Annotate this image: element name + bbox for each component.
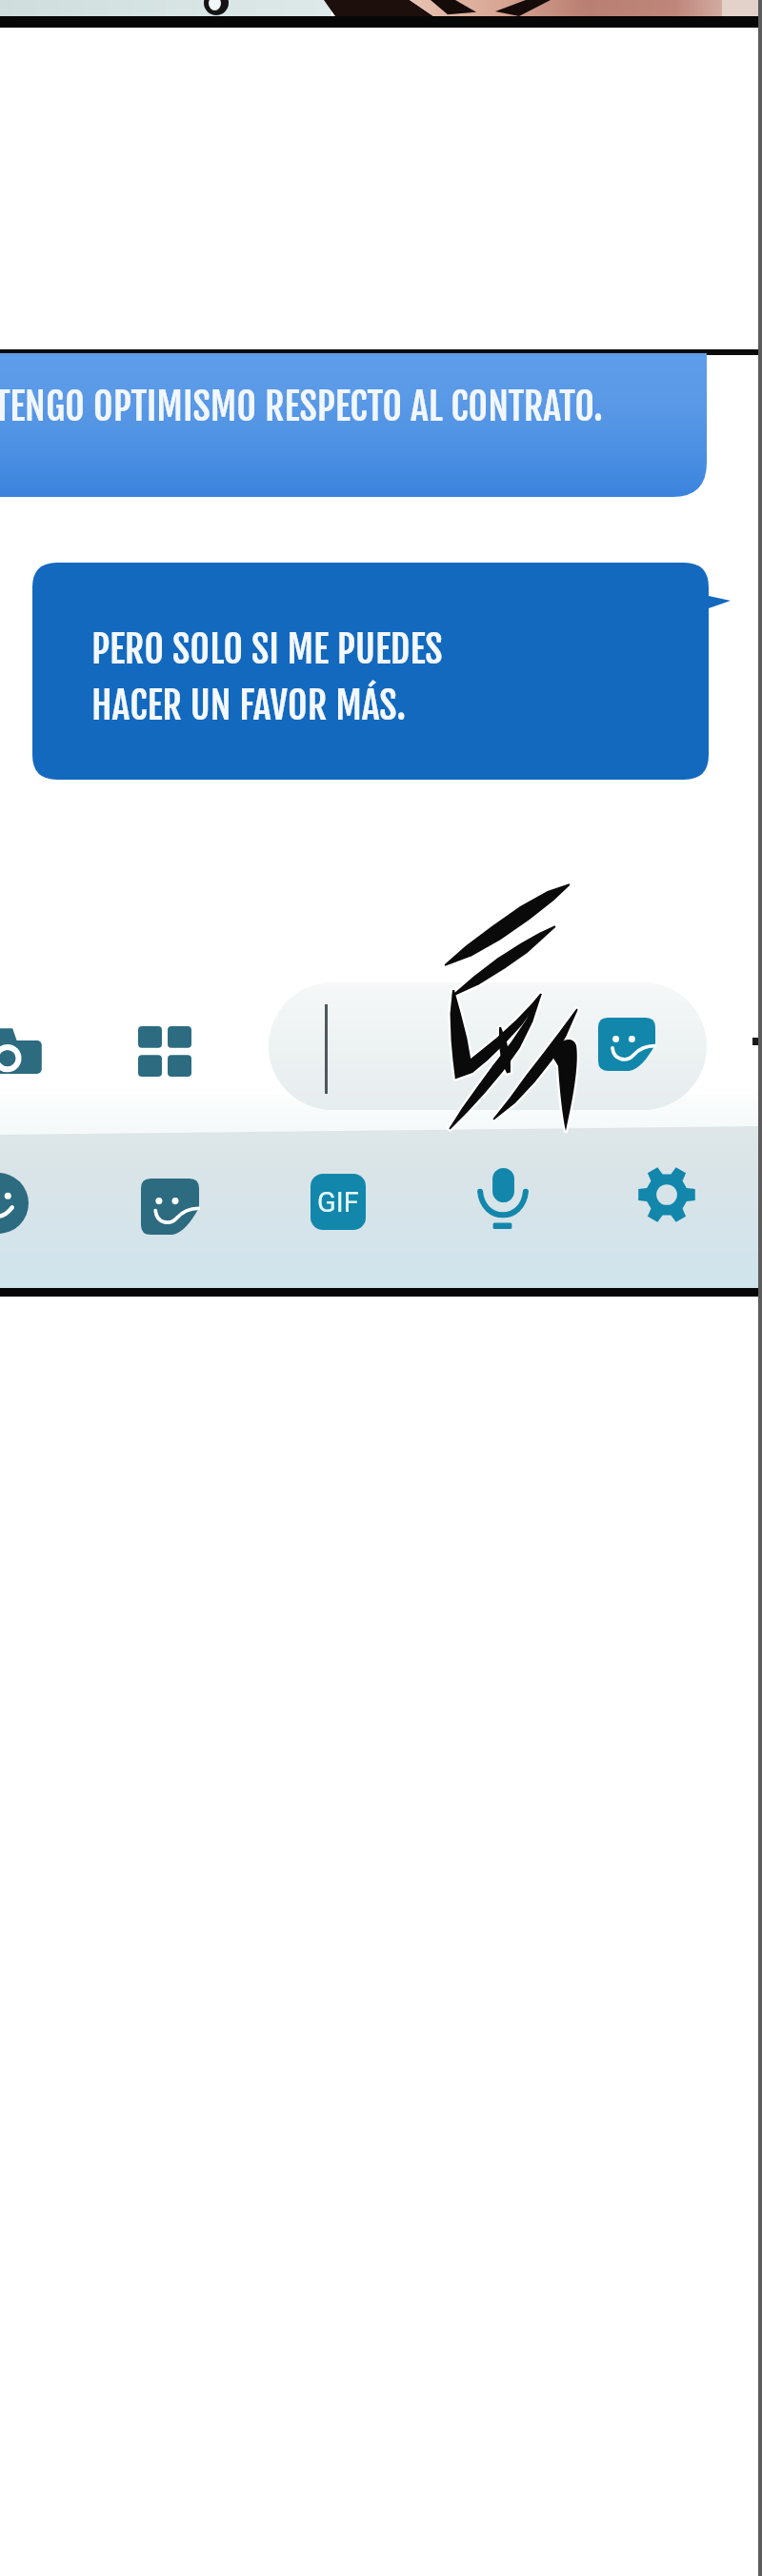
staticText: PERO SOLO SI ME PUEDES — [91, 625, 443, 673]
button[interactable] — [0, 353, 762, 505]
button[interactable]: Camera — [0, 1026, 46, 1081]
button[interactable]: GIF — [311, 1174, 366, 1230]
staticText: TENGO OPTIMISMO RESPECTO AL CONTRATO. — [0, 383, 603, 430]
button[interactable]: Sticker — [141, 1179, 199, 1235]
button[interactable]: Voice input — [478, 1167, 528, 1232]
staticText: HACER UN FAVOR MÁS. — [91, 682, 407, 729]
button[interactable]: Settings — [637, 1165, 696, 1224]
button[interactable]: Emoji — [0, 1173, 29, 1234]
staticText: GIF — [317, 1186, 359, 1219]
button[interactable] — [269, 982, 707, 1110]
button[interactable]: Stickers — [598, 1018, 655, 1071]
button[interactable]: Apps — [138, 1026, 191, 1077]
